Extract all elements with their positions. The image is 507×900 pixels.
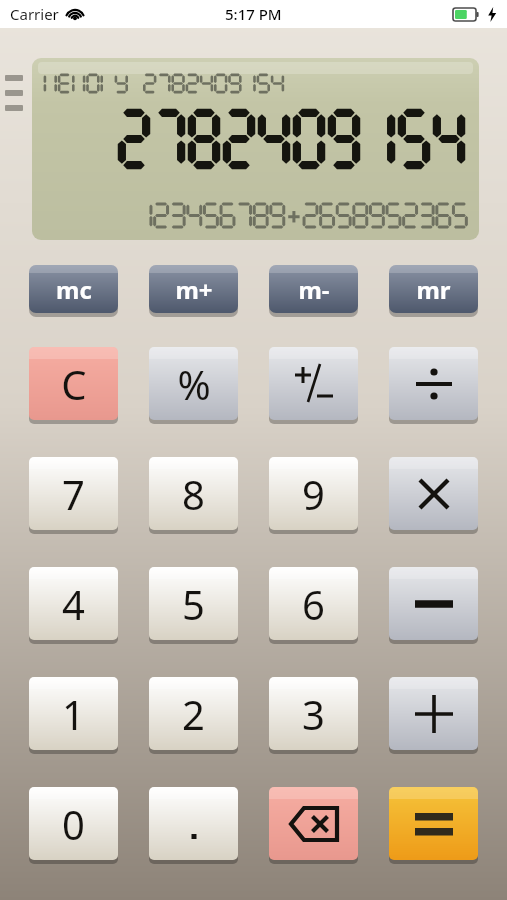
staticText: 2 [182, 687, 205, 741]
button[interactable]: m+ [149, 265, 238, 313]
button[interactable]: 7 [29, 457, 118, 530]
button[interactable]: Decimal point [149, 787, 238, 860]
staticText: C [61, 357, 87, 411]
button[interactable]: Equals [389, 787, 478, 860]
staticText: m+ [175, 273, 213, 306]
staticText: m- [298, 273, 330, 306]
button[interactable]: Subtract [389, 567, 478, 640]
button[interactable]: mr [389, 265, 478, 313]
staticText: 1 [62, 687, 85, 741]
staticText: 7 [62, 467, 85, 521]
button[interactable]: 2 [149, 677, 238, 750]
button[interactable]: m- [269, 265, 358, 313]
button[interactable]: % [149, 347, 238, 420]
staticText: 8 [182, 467, 205, 521]
button[interactable]: 0 [29, 787, 118, 860]
staticText: Carrier [10, 4, 59, 24]
button[interactable]: 1 [29, 677, 118, 750]
staticText: 3 [302, 687, 325, 741]
button[interactable]: 6 [269, 567, 358, 640]
button[interactable]: Plus minus [269, 347, 358, 420]
button[interactable]: Add [389, 677, 478, 750]
button[interactable]: Divide [389, 347, 478, 420]
button[interactable]: C [29, 347, 118, 420]
staticText: 5:17 PM [225, 4, 282, 24]
button[interactable]: 3 [269, 677, 358, 750]
button[interactable]: 8 [149, 457, 238, 530]
button[interactable]: Multiply [389, 457, 478, 530]
staticText: mc [56, 273, 92, 306]
staticText: 0 [62, 797, 85, 851]
staticText: 9 [302, 467, 325, 521]
button[interactable]: mc [29, 265, 118, 313]
button[interactable]: Backspace [269, 787, 358, 860]
staticText: mr [416, 273, 451, 306]
button[interactable]: 4 [29, 567, 118, 640]
button[interactable]: 5 [149, 567, 238, 640]
staticText: 4 [62, 577, 85, 631]
staticText: % [177, 357, 211, 411]
staticText: 6 [302, 577, 325, 631]
staticText: 5 [182, 577, 205, 631]
button[interactable]: 9 [269, 457, 358, 530]
